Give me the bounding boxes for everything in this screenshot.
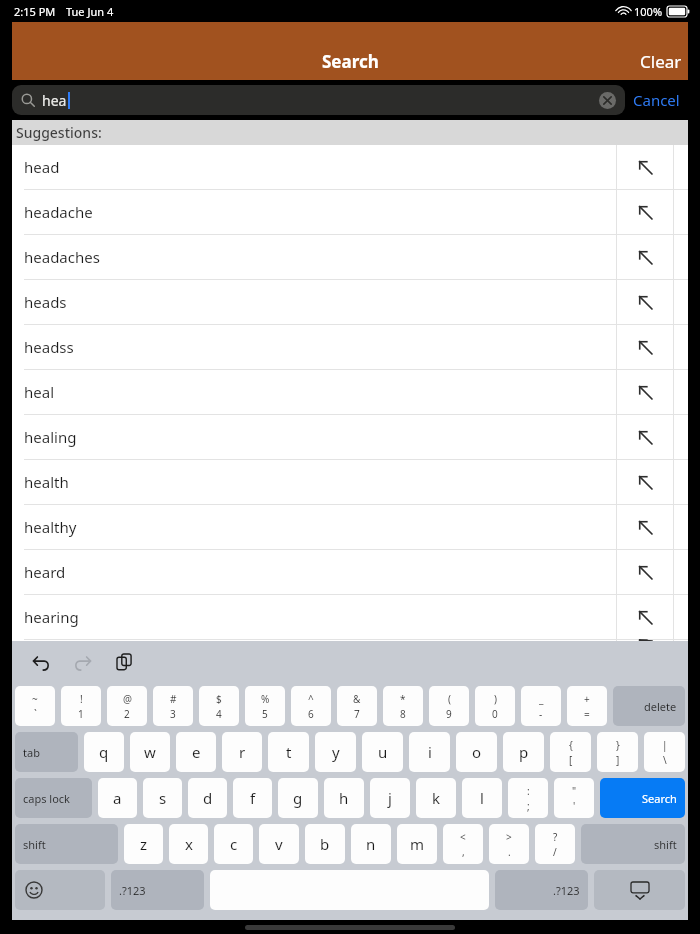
button[interactable]: healing xyxy=(12,415,688,459)
button[interactable]: caps lock xyxy=(15,778,92,818)
button[interactable]: w xyxy=(130,732,170,772)
button[interactable]: q xyxy=(84,732,124,772)
staticText: h xyxy=(339,788,349,808)
button[interactable]: < xyxy=(443,824,483,864)
button[interactable]: ) xyxy=(475,686,515,726)
staticText: p xyxy=(519,742,529,762)
button[interactable]: * xyxy=(383,686,423,726)
button[interactable]: ~ xyxy=(15,686,55,726)
button[interactable]: ^ xyxy=(291,686,331,726)
button[interactable]: delete xyxy=(613,686,685,726)
button[interactable]: Use headaches xyxy=(617,235,673,279)
button[interactable]: h xyxy=(324,778,364,818)
button[interactable]: o xyxy=(456,732,497,772)
button[interactable]: a xyxy=(98,778,137,818)
button[interactable]: Clear text xyxy=(599,92,616,109)
staticText: caps lock xyxy=(23,791,70,806)
button[interactable]: l xyxy=(462,778,502,818)
button[interactable]: Cancel xyxy=(625,86,688,114)
button[interactable]: x xyxy=(169,824,208,864)
button[interactable]: .?123 xyxy=(111,870,204,910)
button[interactable]: Use healing xyxy=(617,415,673,459)
button[interactable]: s xyxy=(143,778,182,818)
button[interactable]: Use heart xyxy=(617,640,673,641)
button[interactable]: Use health xyxy=(617,460,673,504)
button[interactable]: Undo xyxy=(26,647,56,677)
button[interactable]: headss xyxy=(12,325,688,369)
button[interactable]: Clear xyxy=(634,46,688,77)
staticText: 7 xyxy=(354,707,360,721)
button[interactable]: n xyxy=(351,824,391,864)
button[interactable]: heads xyxy=(12,280,688,324)
button[interactable]: d xyxy=(188,778,227,818)
button[interactable]: Use hearing xyxy=(617,595,673,639)
button[interactable]: j xyxy=(370,778,410,818)
button[interactable]: head xyxy=(12,145,688,189)
button[interactable]: .?123 xyxy=(495,870,588,910)
button[interactable]: Use healthy xyxy=(617,505,673,549)
button[interactable]: Use heads xyxy=(617,280,673,324)
button[interactable]: k xyxy=(416,778,456,818)
button[interactable]: heard xyxy=(12,550,688,594)
button[interactable]: Use heal xyxy=(617,370,673,414)
button[interactable]: } xyxy=(597,732,638,772)
button[interactable]: Hide keyboard xyxy=(594,870,685,910)
button[interactable]: c xyxy=(214,824,253,864)
button[interactable]: Use heard xyxy=(617,550,673,594)
button[interactable]: healthy xyxy=(12,505,688,549)
button[interactable]: r xyxy=(222,732,262,772)
button[interactable]: hea xyxy=(12,85,625,115)
button[interactable]: ( xyxy=(429,686,469,726)
button[interactable]: Use head xyxy=(617,145,673,189)
button[interactable]: v xyxy=(259,824,299,864)
staticText: f xyxy=(250,788,256,808)
button[interactable]: heal xyxy=(12,370,688,414)
button[interactable]: { xyxy=(550,732,591,772)
button[interactable]: $ xyxy=(199,686,239,726)
button[interactable]: z xyxy=(124,824,163,864)
button[interactable]: Search xyxy=(600,778,685,818)
button[interactable]: ! xyxy=(61,686,101,726)
button[interactable]: @ xyxy=(107,686,147,726)
button[interactable]: heart xyxy=(12,640,688,641)
button[interactable]: headaches xyxy=(12,235,688,279)
button[interactable]: shift xyxy=(581,824,685,864)
staticText: c xyxy=(230,834,238,854)
button[interactable]: g xyxy=(278,778,318,818)
button[interactable]: > xyxy=(489,824,529,864)
button[interactable]: p xyxy=(503,732,544,772)
button[interactable]: % xyxy=(245,686,285,726)
button[interactable]: hearing xyxy=(12,595,688,639)
staticText: y xyxy=(332,742,340,762)
button[interactable]: y xyxy=(315,732,356,772)
button[interactable]: " xyxy=(554,778,594,818)
button[interactable]: t xyxy=(268,732,309,772)
button[interactable]: Paste xyxy=(110,647,140,677)
button[interactable]: tab xyxy=(15,732,78,772)
button[interactable]: i xyxy=(409,732,450,772)
button[interactable]: Use headache xyxy=(617,190,673,234)
button[interactable]: | xyxy=(644,732,685,772)
button[interactable]: m xyxy=(397,824,437,864)
staticText: : xyxy=(527,784,530,798)
button[interactable]: : xyxy=(508,778,548,818)
button[interactable]: Emoji xyxy=(15,870,105,910)
button[interactable]: f xyxy=(233,778,272,818)
button[interactable]: _ xyxy=(521,686,561,726)
staticText: 0 xyxy=(492,707,498,721)
button[interactable]: headache xyxy=(12,190,688,234)
staticText: o xyxy=(472,742,482,762)
button[interactable]: & xyxy=(337,686,377,726)
button[interactable]: ? xyxy=(535,824,575,864)
staticText: = xyxy=(584,707,590,721)
button[interactable]: health xyxy=(12,460,688,504)
button[interactable]: # xyxy=(153,686,193,726)
button[interactable]: u xyxy=(362,732,403,772)
button[interactable]: + xyxy=(567,686,607,726)
button[interactable]: Redo xyxy=(68,647,98,677)
button[interactable]: shift xyxy=(15,824,118,864)
button[interactable]: b xyxy=(305,824,345,864)
button[interactable]: e xyxy=(176,732,216,772)
button[interactable]: Use headss xyxy=(617,325,673,369)
